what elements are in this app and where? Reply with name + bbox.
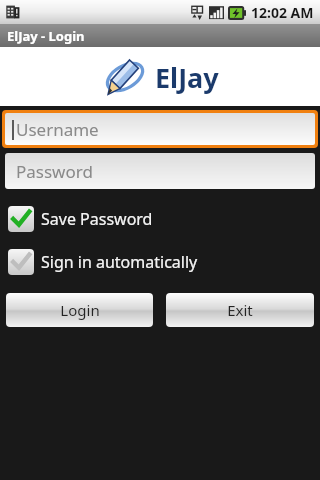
staticText: 12:02 AM [251,3,314,22]
staticText: ElJay - Login [7,27,85,45]
staticText: ElJay [155,59,219,96]
staticText: Password [16,160,93,183]
button[interactable]: Password [5,153,315,189]
other: SD card notification [5,4,21,20]
staticText: Sign in automatically [41,251,198,273]
staticText: Exit [227,300,253,320]
button[interactable]: Save Password [8,204,312,234]
button[interactable]: Exit [166,293,314,327]
button[interactable]: Sign in automatically [8,247,312,277]
staticText: Login [60,300,100,320]
staticText: Username [16,118,99,141]
button[interactable]: Username [5,113,315,145]
staticText: Save Password [41,208,153,230]
button[interactable]: Login [6,293,153,327]
